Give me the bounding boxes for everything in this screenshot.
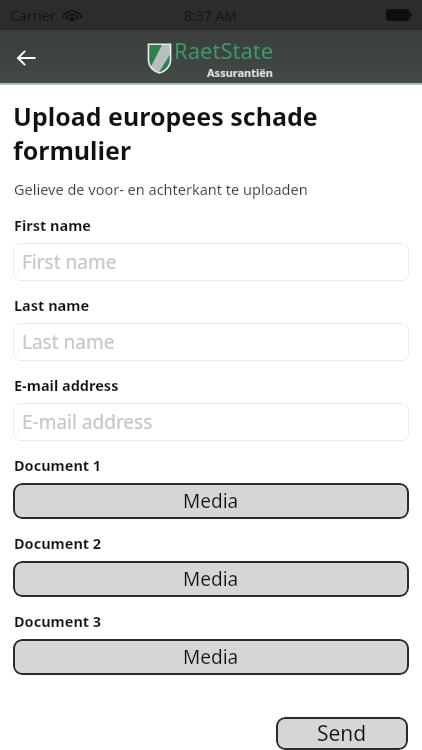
staticText: 8:37 AM xyxy=(184,6,238,25)
staticText: Document 3 xyxy=(14,611,102,631)
button[interactable]: Media xyxy=(13,561,409,597)
button[interactable]: Media xyxy=(13,483,409,519)
staticText: RaetState xyxy=(174,35,274,65)
other: Battery full xyxy=(386,9,412,21)
staticText: Carrier xyxy=(10,6,56,25)
staticText: Media xyxy=(183,644,239,670)
other: Wifi signal xyxy=(64,9,80,22)
button[interactable]: First name xyxy=(13,243,409,281)
staticText: Last name xyxy=(14,295,90,315)
button[interactable]: Send xyxy=(276,717,408,750)
staticText: Assurantiën xyxy=(207,65,274,80)
staticText: Send xyxy=(317,719,367,748)
staticText: First name xyxy=(22,249,117,275)
staticText: E-mail address xyxy=(14,375,119,395)
staticText: Upload europees schade formulier xyxy=(13,99,414,167)
staticText: First name xyxy=(14,215,92,235)
staticText: Media xyxy=(183,488,239,514)
button[interactable]: E-mail address xyxy=(13,403,409,441)
staticText: Gelieve de voor- en achterkant te upload… xyxy=(14,179,308,199)
staticText: Last name xyxy=(22,329,115,355)
staticText: Document 1 xyxy=(14,455,102,475)
staticText: Media xyxy=(183,566,239,592)
button[interactable]: Media xyxy=(13,639,409,675)
staticText: E-mail address xyxy=(22,409,153,435)
button[interactable]: Back xyxy=(0,32,52,84)
staticText: Document 2 xyxy=(14,533,102,553)
button[interactable]: Last name xyxy=(13,323,409,361)
